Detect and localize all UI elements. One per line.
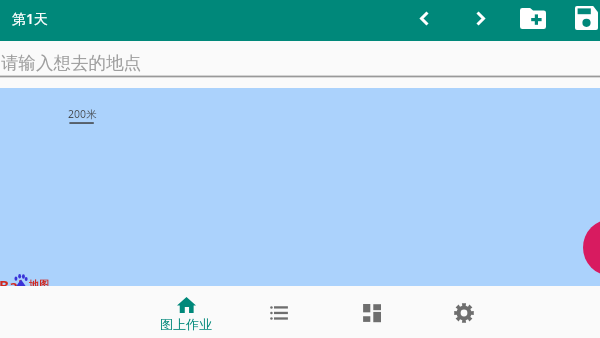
button[interactable]: List — [232, 286, 325, 338]
button[interactable]: Save — [569, 0, 600, 38]
staticText: 图上作业 — [160, 316, 212, 332]
button[interactable]: New folder — [511, 0, 555, 39]
staticText: 地图 — [29, 278, 49, 291]
staticText: 200米 — [68, 107, 97, 121]
button[interactable]: Previous day — [406, 0, 443, 39]
button[interactable]: Dashboard — [325, 286, 418, 338]
staticText: 第1天 — [12, 9, 49, 28]
button[interactable]: Add place — [583, 219, 600, 276]
button[interactable]: Settings — [417, 286, 510, 338]
staticText: 请输入想去的地点 — [1, 52, 141, 74]
button[interactable]: Next day — [461, 0, 499, 39]
button[interactable]: 图上作业 — [139, 286, 232, 338]
staticText: Bai — [0, 275, 23, 291]
button[interactable]: 请输入想去的地点 — [0, 41, 600, 88]
